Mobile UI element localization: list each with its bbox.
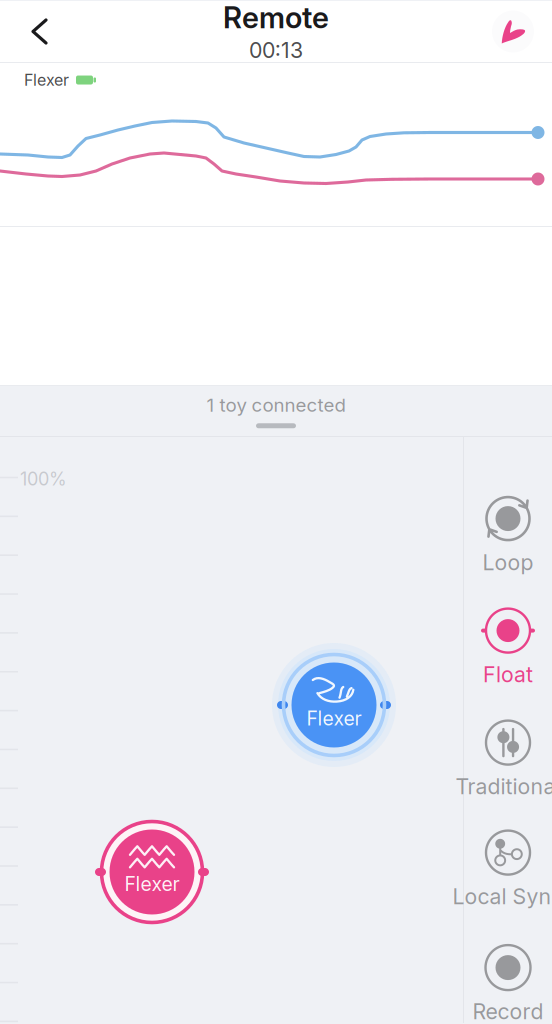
- staticText: Record: [472, 999, 543, 1024]
- staticText: Traditional: [455, 774, 552, 799]
- button[interactable]: Record: [472, 937, 543, 1024]
- staticText: Flexer: [24, 70, 69, 90]
- staticText: Flexer: [124, 872, 179, 896]
- button[interactable]: Toy settings: [474, 1, 552, 61]
- button[interactable]: Back: [0, 6, 66, 57]
- staticText: 1 toy connected: [206, 394, 345, 416]
- button[interactable]: Traditional: [455, 712, 552, 806]
- staticText: Float: [483, 662, 533, 687]
- button[interactable]: Loop: [482, 488, 533, 582]
- staticText: 100%: [20, 468, 67, 490]
- staticText: Remote: [223, 0, 329, 35]
- staticText: Local Sync: [452, 884, 552, 909]
- staticText: Loop: [482, 550, 533, 575]
- staticText: Flexer: [306, 707, 361, 730]
- button[interactable]: Local Sync: [452, 822, 552, 916]
- button[interactable]: Float: [481, 600, 535, 694]
- staticText: 00:13: [249, 37, 303, 63]
